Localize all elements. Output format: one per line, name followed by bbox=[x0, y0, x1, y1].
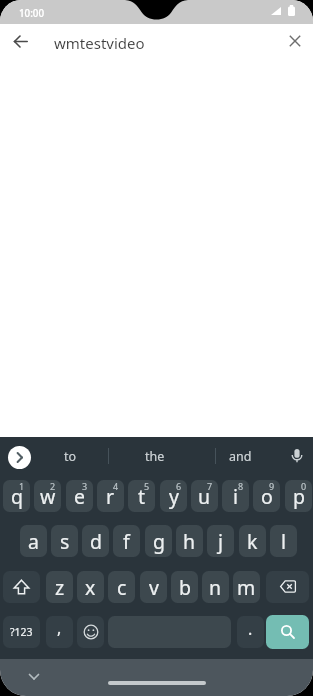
button[interactable] bbox=[266, 615, 309, 649]
button[interactable]: b bbox=[171, 571, 198, 603]
staticText: m bbox=[237, 574, 256, 601]
button[interactable]: f bbox=[113, 525, 140, 557]
staticText: n bbox=[209, 574, 222, 601]
staticText: q bbox=[11, 483, 23, 510]
button[interactable]: i bbox=[222, 480, 249, 512]
staticText: u bbox=[198, 483, 211, 510]
staticText: e bbox=[74, 483, 85, 510]
staticText: the bbox=[145, 448, 165, 465]
staticText: d bbox=[90, 528, 102, 555]
button[interactable]: r bbox=[97, 480, 124, 512]
button[interactable]: w bbox=[34, 480, 61, 512]
button[interactable] bbox=[266, 571, 309, 603]
staticText: ?123 bbox=[10, 625, 33, 639]
button[interactable] bbox=[7, 445, 31, 469]
staticText: f bbox=[123, 528, 130, 555]
button[interactable]: , bbox=[46, 616, 73, 648]
staticText: 4 bbox=[113, 480, 119, 492]
staticText: to bbox=[64, 448, 77, 465]
button[interactable]: e bbox=[66, 480, 93, 512]
button[interactable] bbox=[285, 444, 309, 468]
button[interactable]: c bbox=[108, 571, 135, 603]
staticText: and bbox=[229, 448, 252, 465]
button[interactable]: v bbox=[140, 571, 167, 603]
button[interactable]: h bbox=[176, 525, 203, 557]
staticText: v bbox=[149, 574, 159, 601]
button[interactable]: n bbox=[202, 571, 229, 603]
staticText: 1 bbox=[19, 480, 25, 492]
button[interactable]: p bbox=[285, 480, 312, 512]
button[interactable]: u bbox=[191, 480, 218, 512]
button[interactable]: q bbox=[3, 480, 30, 512]
button[interactable]: a bbox=[20, 525, 47, 557]
staticText: p bbox=[293, 483, 305, 510]
staticText: s bbox=[60, 528, 70, 555]
staticText: b bbox=[179, 574, 191, 601]
staticText: y bbox=[169, 483, 179, 510]
button[interactable]: . bbox=[237, 616, 264, 648]
staticText: j bbox=[218, 528, 224, 555]
staticText: wmtestvideo bbox=[54, 33, 145, 53]
button[interactable] bbox=[21, 664, 46, 689]
staticText: , bbox=[57, 617, 62, 639]
staticText: 6 bbox=[176, 480, 182, 492]
staticText: g bbox=[153, 528, 165, 555]
staticText: a bbox=[28, 528, 39, 555]
staticText: 0 bbox=[301, 480, 307, 492]
button[interactable]: z bbox=[46, 571, 73, 603]
button[interactable]: l bbox=[270, 525, 297, 557]
button[interactable]: ?123 bbox=[3, 616, 40, 648]
button[interactable]: s bbox=[51, 525, 78, 557]
button[interactable] bbox=[77, 616, 104, 648]
button[interactable]: x bbox=[77, 571, 104, 603]
button[interactable]: and bbox=[205, 443, 275, 469]
button[interactable]: k bbox=[239, 525, 266, 557]
staticText: h bbox=[183, 528, 196, 555]
button[interactable] bbox=[3, 571, 40, 603]
staticText: 3 bbox=[82, 480, 88, 492]
button[interactable]: the bbox=[120, 443, 190, 469]
staticText: l bbox=[281, 528, 287, 555]
staticText: o bbox=[261, 483, 273, 510]
staticText: 7 bbox=[207, 480, 213, 492]
staticText: 8 bbox=[238, 480, 244, 492]
button[interactable]: m bbox=[233, 571, 260, 603]
staticText: i bbox=[233, 483, 239, 510]
staticText: c bbox=[117, 574, 127, 601]
staticText: w bbox=[40, 483, 56, 510]
staticText: k bbox=[247, 528, 258, 555]
staticText: . bbox=[248, 618, 253, 640]
staticText: t bbox=[138, 483, 146, 510]
staticText: 5 bbox=[144, 480, 150, 492]
button[interactable] bbox=[108, 681, 206, 685]
button[interactable]: y bbox=[160, 480, 187, 512]
button[interactable]: g bbox=[145, 525, 172, 557]
staticText: 10:00 bbox=[19, 7, 45, 20]
button[interactable] bbox=[282, 28, 308, 54]
button[interactable]: d bbox=[82, 525, 109, 557]
staticText: r bbox=[106, 483, 115, 510]
button[interactable]: t bbox=[128, 480, 155, 512]
staticText: x bbox=[85, 574, 96, 601]
staticText: 9 bbox=[269, 480, 275, 492]
button[interactable]: j bbox=[207, 525, 234, 557]
staticText: 2 bbox=[50, 480, 56, 492]
button[interactable] bbox=[8, 29, 34, 55]
button[interactable]: to bbox=[40, 443, 100, 469]
button[interactable]: o bbox=[253, 480, 280, 512]
staticText: z bbox=[55, 574, 65, 601]
